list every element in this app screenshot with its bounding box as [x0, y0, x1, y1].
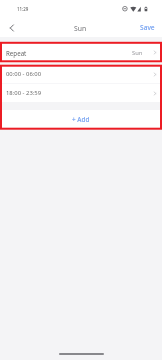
- staticText: Save: [140, 23, 155, 32]
- button[interactable]: Repeat: Sun: [0, 42, 162, 63]
- button[interactable]: Save: [134, 18, 161, 37]
- button[interactable]: 18:00 - 23:59: [0, 84, 162, 102]
- staticText: Sun: [132, 49, 143, 57]
- button[interactable]: Back: [1, 17, 22, 38]
- button[interactable]: + Add: [0, 110, 162, 128]
- staticText: 00:00 - 06:00: [6, 70, 42, 78]
- staticText: 11:29: [17, 6, 29, 12]
- staticText: Repeat: [6, 49, 27, 57]
- staticText: + Add: [72, 115, 90, 124]
- button[interactable]: 00:00 - 06:00: [0, 65, 162, 83]
- staticText: 18:00 - 23:59: [6, 89, 42, 97]
- staticText: Sun: [74, 24, 87, 33]
